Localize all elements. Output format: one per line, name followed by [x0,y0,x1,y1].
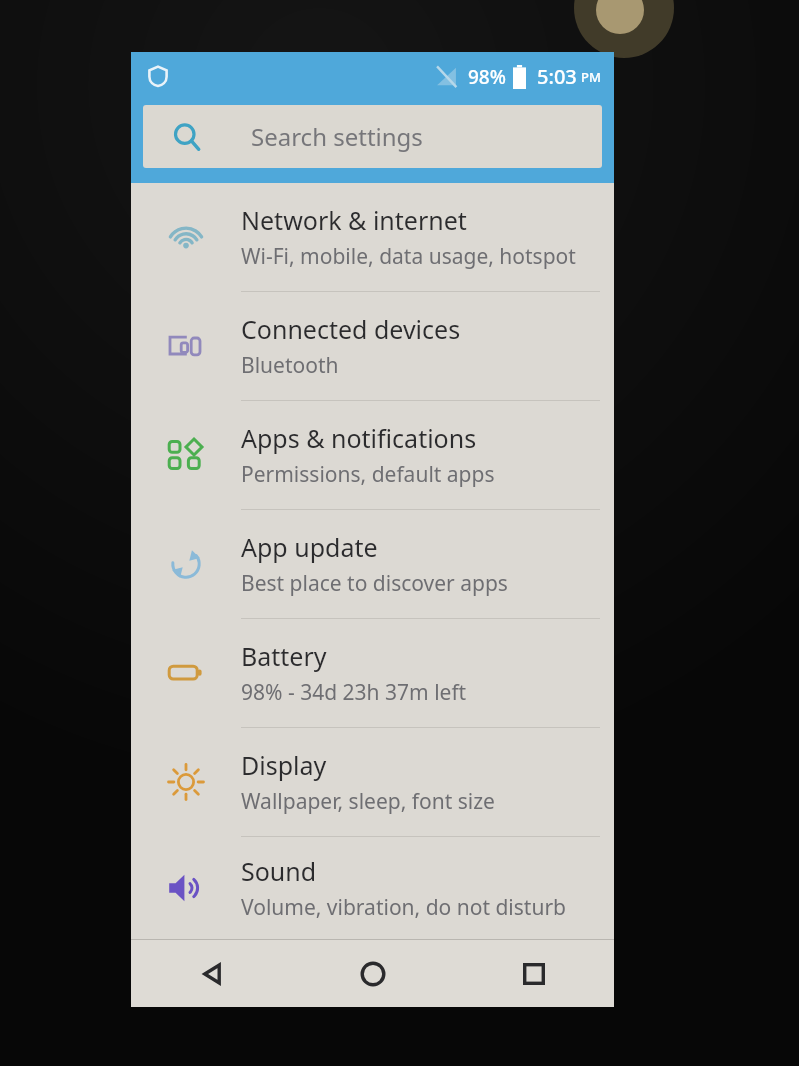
staticText: Wi-Fi, mobile, data usage, hotspot [241,242,576,271]
button[interactable]: Back [131,940,292,1007]
button[interactable]: Recent apps [453,940,614,1007]
button[interactable]: Display [131,728,614,836]
staticText: Volume, vibration, do not disturb [241,893,566,922]
staticText: Battery [241,639,327,673]
staticText: Connected devices [241,312,461,346]
staticText: App update [241,530,378,564]
staticText: Bluetooth [241,351,339,380]
staticText: 98% - 34d 23h 37m left [241,678,467,707]
staticText: Wallpaper, sleep, font size [241,787,495,816]
staticText: Search settings [251,120,423,153]
button[interactable]: Network & internet [131,183,614,291]
button[interactable]: Battery [131,619,614,727]
staticText: Display [241,748,327,782]
staticText: 5:03 [537,63,577,90]
staticText: Best place to discover apps [241,569,508,598]
button[interactable]: Sound [131,837,614,939]
button[interactable]: Security status [141,59,175,93]
staticText: Sound [241,854,317,888]
button[interactable]: Search settings [143,105,602,168]
staticText: PM [581,68,601,86]
button[interactable]: Home [292,940,453,1007]
staticText: Network & internet [241,203,467,237]
staticText: Permissions, default apps [241,460,495,489]
button[interactable]: Connected devices [131,292,614,400]
button[interactable]: Apps & notifications [131,401,614,509]
button[interactable]: App update [131,510,614,618]
staticText: 98% [468,64,506,90]
staticText: Apps & notifications [241,421,477,455]
